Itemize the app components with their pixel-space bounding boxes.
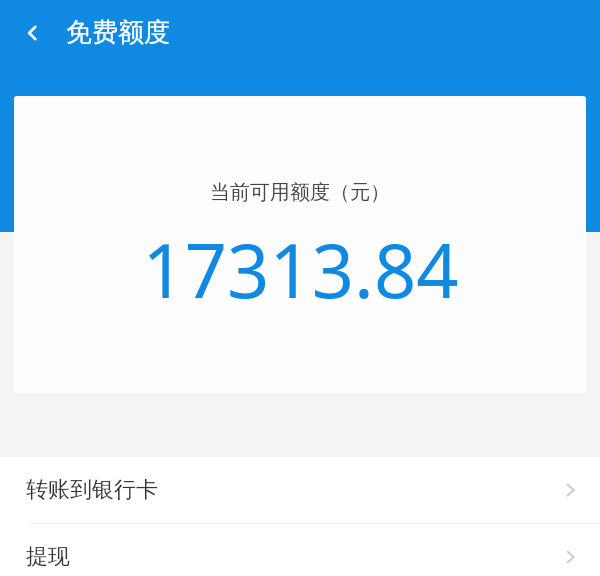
staticText: 免费额度 bbox=[66, 16, 170, 49]
button[interactable]: Back bbox=[10, 10, 56, 56]
staticText: 提现 bbox=[26, 543, 70, 571]
staticText: 转账到银行卡 bbox=[26, 476, 158, 504]
button[interactable]: 转账到银行卡 bbox=[0, 457, 600, 523]
button[interactable]: 提现 bbox=[0, 524, 600, 576]
staticText: 当前可用额度（元） bbox=[210, 180, 390, 205]
staticText: 17313.84 bbox=[142, 219, 459, 320]
